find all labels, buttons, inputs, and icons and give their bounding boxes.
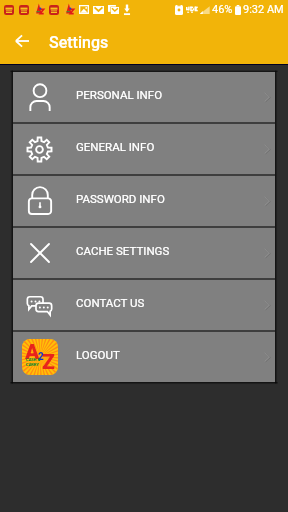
button[interactable]: CONTACT US	[13, 280, 275, 330]
staticText: Settings	[49, 33, 109, 52]
staticText: 9:32 AM	[243, 3, 284, 16]
button[interactable]: PASSWORD INFO	[13, 176, 275, 226]
button[interactable]: A	[13, 332, 275, 382]
staticText: LOGOUT	[76, 348, 120, 361]
staticText: PASSWORD INFO	[76, 192, 165, 205]
staticText: GENERAL INFO	[76, 140, 155, 153]
staticText: CACHE SETTINGS	[76, 244, 170, 257]
button[interactable]: GENERAL INFO	[13, 124, 275, 174]
button[interactable]: CACHE SETTINGS	[13, 228, 275, 278]
button[interactable]: Back	[4, 23, 40, 59]
staticText: 2	[38, 351, 44, 363]
staticText: 46%	[212, 3, 233, 16]
staticText: A	[25, 340, 40, 365]
staticText: CASH & CARRY	[26, 357, 41, 367]
button[interactable]: PERSONAL INFO	[13, 72, 275, 122]
staticText: CONTACT US	[76, 296, 145, 309]
staticText: Z	[42, 350, 55, 375]
staticText: PERSONAL INFO	[76, 88, 163, 101]
